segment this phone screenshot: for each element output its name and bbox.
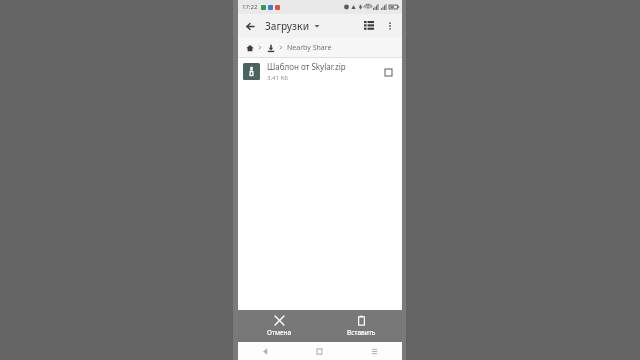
staticText: 17:22	[242, 3, 258, 11]
button[interactable]: Back	[238, 14, 262, 38]
staticText: Nearby Share	[287, 43, 332, 53]
button[interactable]: Home	[292, 342, 347, 360]
staticText: Отмена	[267, 328, 292, 337]
button[interactable]: Recents	[347, 342, 402, 360]
button[interactable]: List view	[358, 15, 380, 37]
button[interactable]: More options	[380, 16, 400, 36]
button[interactable]: Home	[243, 41, 257, 55]
staticText: Шаблон от Skylar.zip	[267, 61, 346, 72]
button[interactable]: Select file	[379, 63, 397, 81]
button[interactable]: Отмена	[238, 310, 320, 342]
staticText: Вставить	[347, 328, 376, 337]
button[interactable]: Шаблон от Skylar.zip	[238, 58, 402, 85]
button[interactable]: Загрузки	[262, 19, 323, 33]
button[interactable]: Nearby Share	[285, 43, 334, 53]
button[interactable]: Back	[238, 342, 292, 360]
button[interactable]: Вставить	[320, 310, 402, 342]
staticText: Загрузки	[265, 19, 310, 33]
button[interactable]: Downloads	[264, 41, 278, 55]
staticText: 3,41 КБ	[267, 74, 288, 82]
